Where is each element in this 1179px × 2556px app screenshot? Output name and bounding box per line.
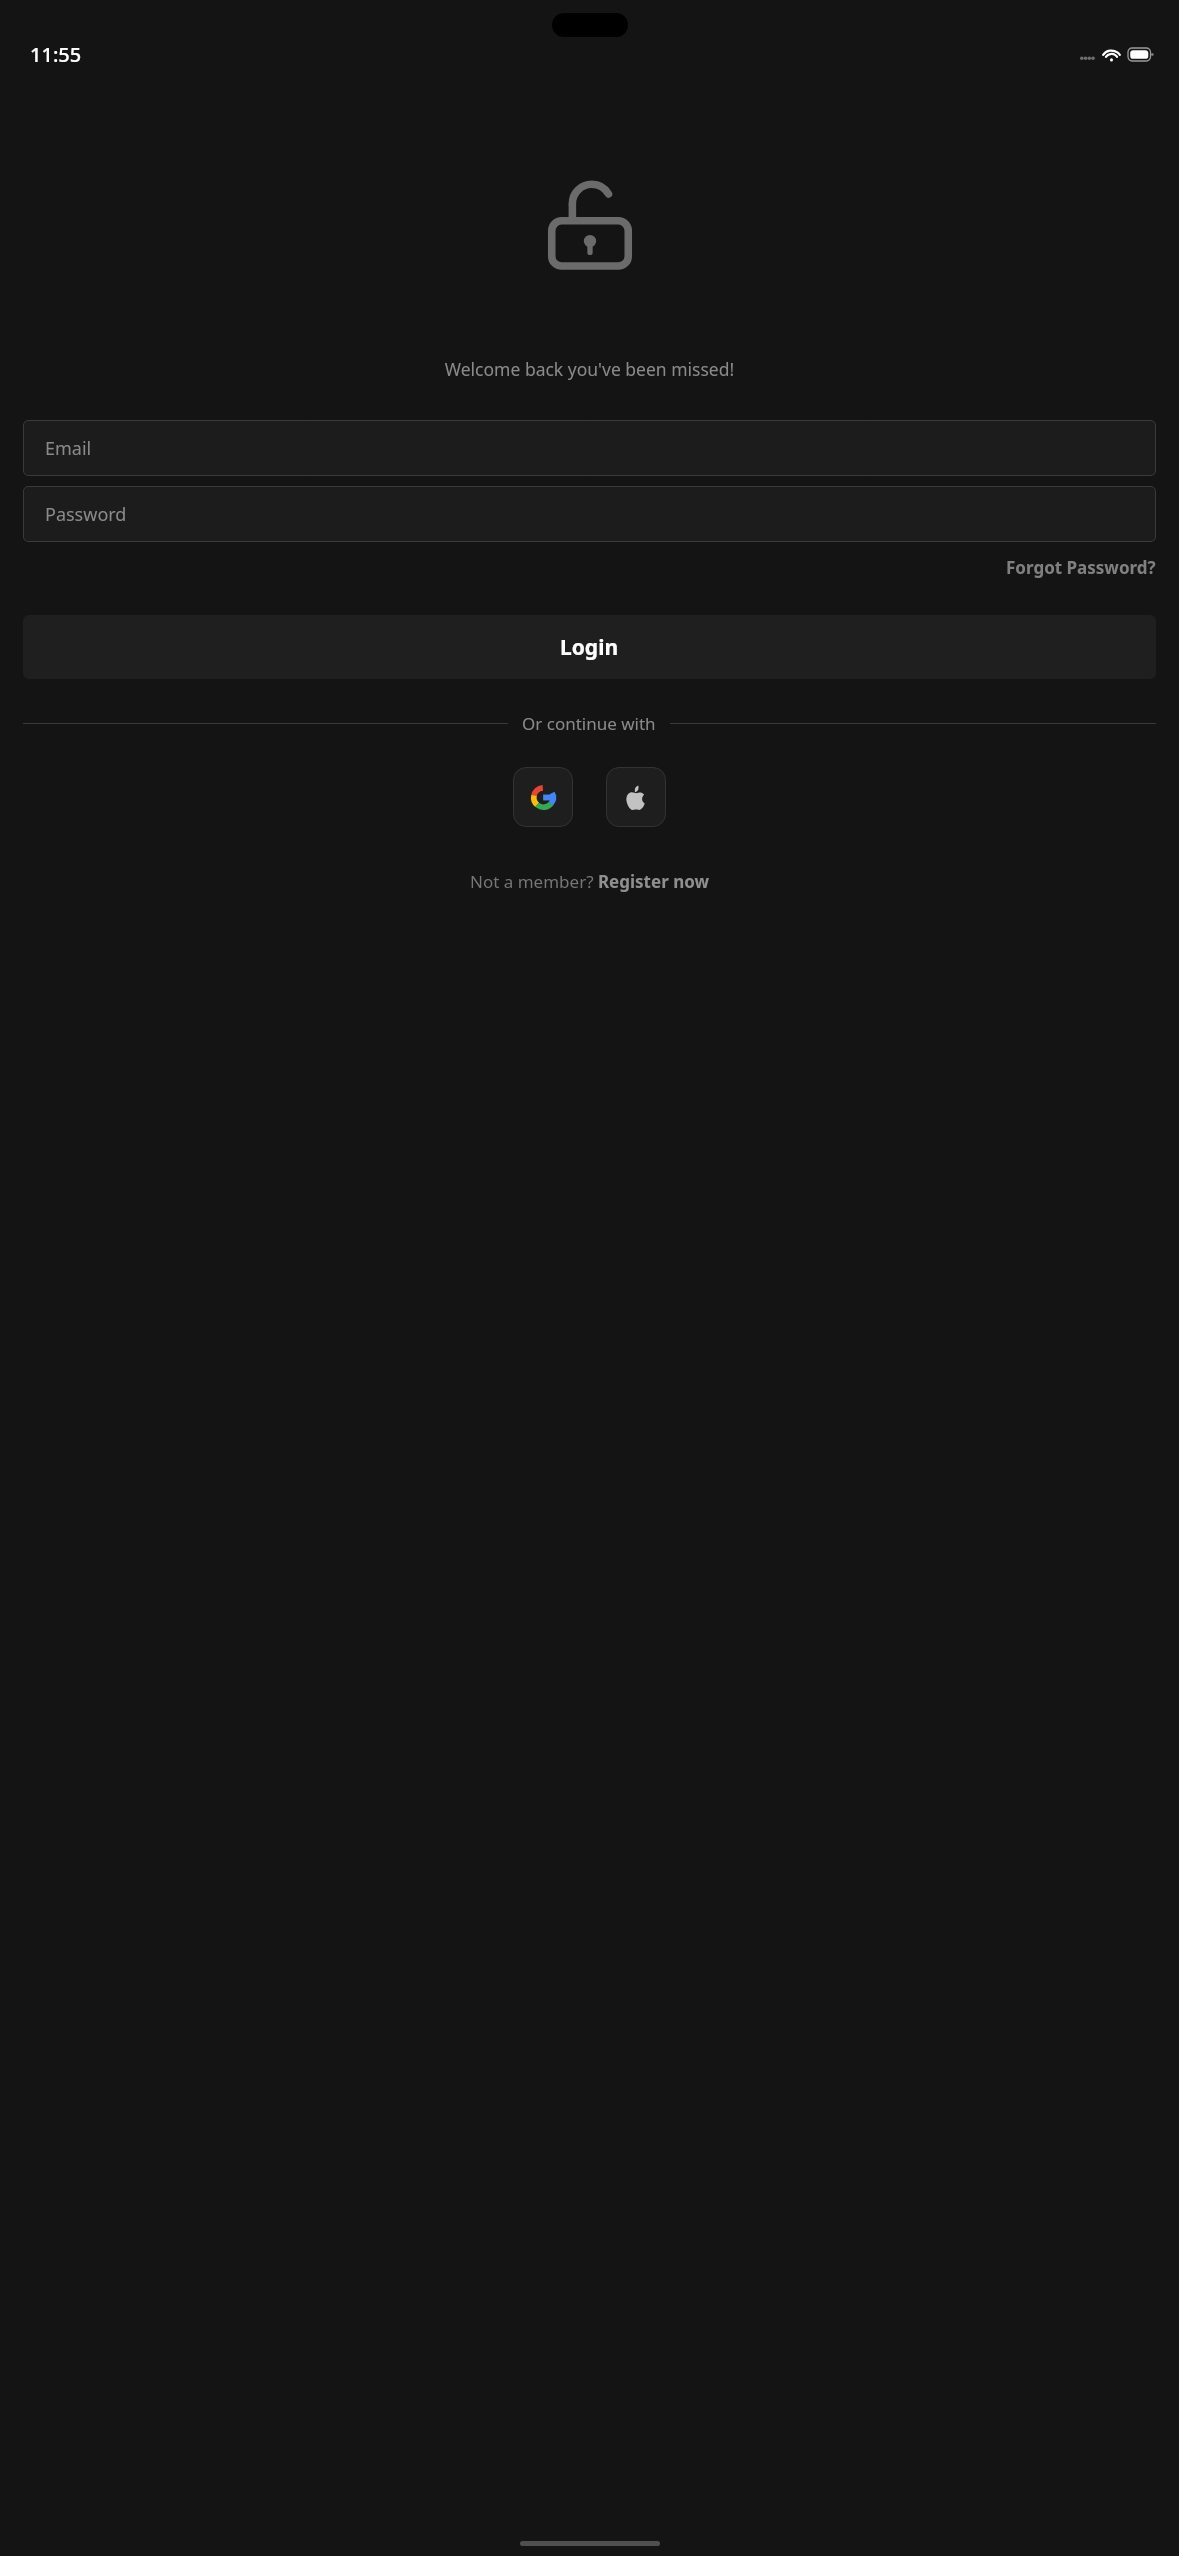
staticText: Not a member? Register now xyxy=(470,870,710,893)
staticText: Email xyxy=(45,436,92,461)
button[interactable]: Login xyxy=(23,615,1156,679)
button[interactable]: Continue with Google xyxy=(513,767,573,827)
button[interactable]: Password xyxy=(23,486,1156,542)
staticText: Or continue with xyxy=(522,712,656,735)
staticText: Password xyxy=(45,502,127,527)
button[interactable]: Forgot Password? xyxy=(1006,552,1156,583)
staticText: Forgot Password? xyxy=(1006,556,1156,579)
staticText: Login xyxy=(560,633,619,662)
staticText: 11:55 xyxy=(30,41,82,68)
button[interactable]: Continue with Apple xyxy=(606,767,666,827)
button[interactable]: Not a member? Register now xyxy=(464,864,716,899)
button[interactable]: Email xyxy=(23,420,1156,476)
staticText: Welcome back you've been missed! xyxy=(0,357,1179,381)
